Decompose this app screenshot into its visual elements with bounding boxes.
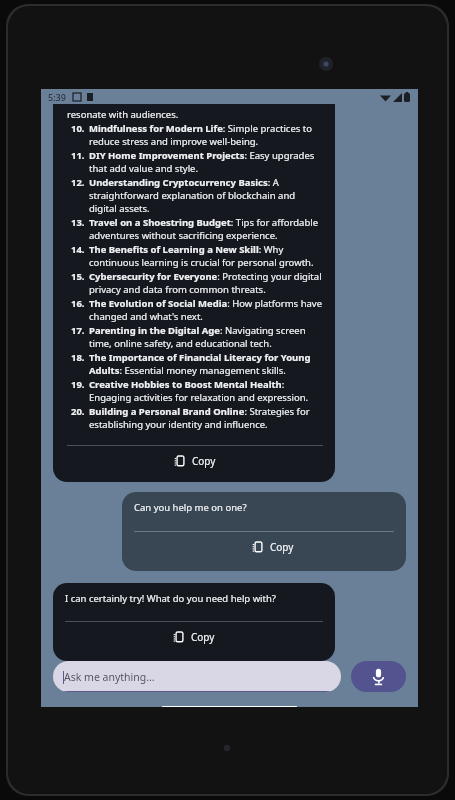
staticText: 15. xyxy=(71,270,85,283)
staticText: Mindfulness for Modern Life: Simple prac… xyxy=(89,122,323,148)
staticText: 10. xyxy=(71,122,85,135)
staticText: Travel on a Shoestring Budget: Tips for … xyxy=(89,216,323,242)
button[interactable]: I can certainly try! What do you need he… xyxy=(53,583,335,661)
staticText: DIY Home Improvement Projects: Easy upgr… xyxy=(89,149,323,175)
staticText: Building a Personal Brand Online: Strate… xyxy=(89,405,323,431)
button[interactable]: Copy xyxy=(67,446,323,476)
button[interactable]: Can you help me on one? xyxy=(122,492,406,571)
staticText: 12. xyxy=(71,176,85,189)
button[interactable]: Copy xyxy=(134,532,394,562)
staticText: 11. xyxy=(71,149,85,162)
staticText: Ask me anything... xyxy=(64,670,155,684)
button[interactable]: Voice input xyxy=(351,661,406,692)
staticText: Can you help me on one? xyxy=(134,501,247,514)
staticText: Copy xyxy=(192,454,216,468)
staticText: resonate with audiences. xyxy=(67,108,179,121)
staticText: 14. xyxy=(71,243,85,256)
staticText: The Importance of Financial Literacy for… xyxy=(89,351,323,377)
other: Copy xyxy=(174,456,185,467)
other: Copy xyxy=(173,632,184,643)
button[interactable]: Ask me anything... xyxy=(53,661,341,692)
staticText: Creative Hobbies to Boost Mental Health:… xyxy=(89,378,323,404)
staticText: 20. xyxy=(71,405,85,418)
button[interactable]: resonate with audiences. xyxy=(53,104,335,482)
staticText: 17. xyxy=(71,324,85,337)
staticText: Cybersecurity for Everyone: Protecting y… xyxy=(89,270,323,296)
button[interactable]: Copy xyxy=(65,622,323,652)
staticText: Copy xyxy=(270,540,294,554)
staticText: 16. xyxy=(71,297,85,310)
staticText: Parenting in the Digital Age: Navigating… xyxy=(89,324,323,350)
staticText: Copy xyxy=(191,630,215,644)
staticText: 13. xyxy=(71,216,85,229)
staticText: 5:39 xyxy=(48,91,66,103)
staticText: I can certainly try! What do you need he… xyxy=(65,592,276,605)
staticText: Understanding Cryptocurrency Basics: A s… xyxy=(89,176,323,215)
staticText: The Benefits of Learning a New Skill: Wh… xyxy=(89,243,323,269)
staticText: 19. xyxy=(71,378,85,391)
staticText: The Evolution of Social Media: How platf… xyxy=(89,297,323,323)
other: Copy xyxy=(252,542,263,553)
staticText: 18. xyxy=(71,351,85,364)
